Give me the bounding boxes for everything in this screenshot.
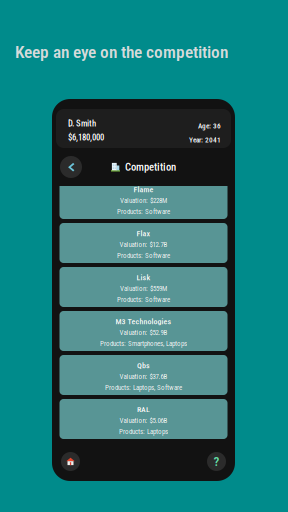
- staticText: Flax: [136, 229, 150, 238]
- staticText: M3 Technologies: [115, 317, 171, 326]
- staticText: Qbs: [137, 361, 150, 370]
- staticText: Valuation: $12.7B: [119, 240, 167, 249]
- staticText: RAL: [137, 405, 150, 414]
- staticText: Valuation: $5.06B: [119, 416, 167, 425]
- staticText: Valuation: $52.9B: [119, 328, 167, 337]
- staticText: Flame: [133, 185, 153, 194]
- staticText: Keep an eye on the competition: [15, 42, 228, 62]
- staticText: Age: 36: [198, 122, 221, 130]
- button[interactable]: Flame: [59, 179, 227, 219]
- button[interactable]: Home: [61, 452, 80, 471]
- button[interactable]: Back: [60, 156, 82, 178]
- staticText: Products: Laptops: [119, 427, 168, 436]
- staticText: Products: Laptops, Software: [105, 383, 182, 392]
- staticText: Valuation: $559M: [120, 284, 167, 293]
- button[interactable]: Flax: [59, 223, 227, 263]
- staticText: Products: Software: [117, 251, 170, 260]
- staticText: Year: 2041: [189, 136, 221, 144]
- staticText: Lisk: [136, 273, 150, 282]
- staticText: D. Smith: [68, 118, 96, 129]
- staticText: $6,180,000: [68, 132, 104, 143]
- button[interactable]: RAL: [59, 399, 227, 439]
- staticText: Products: Smartphones, Laptops: [100, 339, 187, 348]
- staticText: Products: Software: [117, 207, 170, 216]
- staticText: Valuation: $228M: [120, 196, 167, 205]
- button[interactable]: Help: [207, 452, 226, 471]
- staticText: Valuation: $37.6B: [119, 372, 167, 381]
- staticText: ?: [213, 454, 219, 469]
- staticText: Products: Software: [117, 295, 170, 304]
- button[interactable]: Lisk: [59, 267, 227, 307]
- staticText: Competition: [125, 161, 176, 173]
- button[interactable]: M3 Technologies: [59, 311, 227, 351]
- button[interactable]: Qbs: [59, 355, 227, 395]
